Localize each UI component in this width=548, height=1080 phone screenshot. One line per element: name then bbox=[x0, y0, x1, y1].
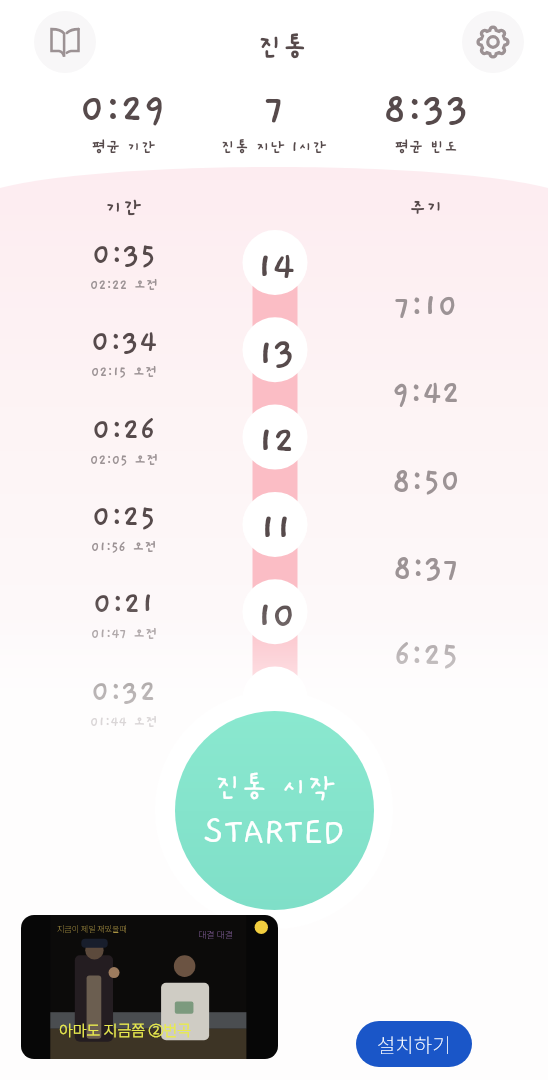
staticText: 02:22 오전 bbox=[90, 278, 159, 293]
staticText: 8:37 bbox=[393, 551, 460, 586]
staticText: 6:25 bbox=[394, 638, 459, 673]
staticText: 8:33 bbox=[383, 88, 470, 132]
staticText: 0:35 bbox=[92, 239, 157, 272]
staticText: 10 bbox=[256, 595, 295, 637]
staticText: 평균 빈도 bbox=[395, 139, 458, 156]
staticText: 01:56 오전 bbox=[91, 540, 157, 555]
staticText: 진통 지난 1시간 bbox=[221, 139, 327, 156]
staticText: 0:32 bbox=[91, 676, 157, 709]
staticText: 0:34 bbox=[91, 326, 158, 359]
staticText: 주기 bbox=[409, 197, 444, 218]
staticText: 7 bbox=[264, 88, 285, 132]
staticText: 01:47 오전 bbox=[91, 627, 158, 642]
staticText: 0:26 bbox=[92, 414, 156, 447]
button[interactable]: Guide bbox=[34, 11, 96, 73]
staticText: 12 bbox=[257, 420, 293, 462]
button[interactable]: Advertisement video bbox=[21, 915, 278, 1059]
staticText: 평균 기간 bbox=[92, 139, 155, 156]
staticText: 0:25 bbox=[92, 501, 156, 534]
staticText: 8:50 bbox=[392, 464, 461, 499]
staticText: 0:21 bbox=[93, 588, 155, 621]
staticText: 진통 bbox=[258, 33, 308, 63]
staticText: 02:15 오전 bbox=[91, 365, 158, 380]
button[interactable]: 진통 시작 bbox=[175, 711, 374, 910]
staticText: 9 bbox=[265, 682, 285, 724]
staticText: 지금이 제일 재밌을때 bbox=[57, 923, 127, 935]
staticText: 11 bbox=[259, 507, 291, 549]
staticText: 대결 대결 bbox=[198, 928, 234, 941]
staticText: 아마도 지금쯤 ②번곡 bbox=[59, 1019, 192, 1041]
staticText: 02:05 오전 bbox=[90, 453, 159, 468]
button[interactable]: Settings bbox=[462, 11, 524, 73]
staticText: STARTED bbox=[204, 812, 345, 851]
staticText: 9:42 bbox=[392, 376, 460, 411]
staticText: 14 bbox=[256, 246, 294, 288]
staticText: 7:10 bbox=[394, 289, 458, 324]
staticText: 01:44 오전 bbox=[90, 715, 158, 730]
button[interactable]: 설치하기 bbox=[356, 1021, 472, 1067]
staticText: 13 bbox=[257, 333, 294, 375]
staticText: 설치하기 bbox=[377, 1030, 451, 1059]
staticText: 0:29 bbox=[80, 88, 167, 132]
staticText: 기간 bbox=[105, 197, 142, 219]
staticText: 진통 시작 bbox=[215, 773, 334, 805]
